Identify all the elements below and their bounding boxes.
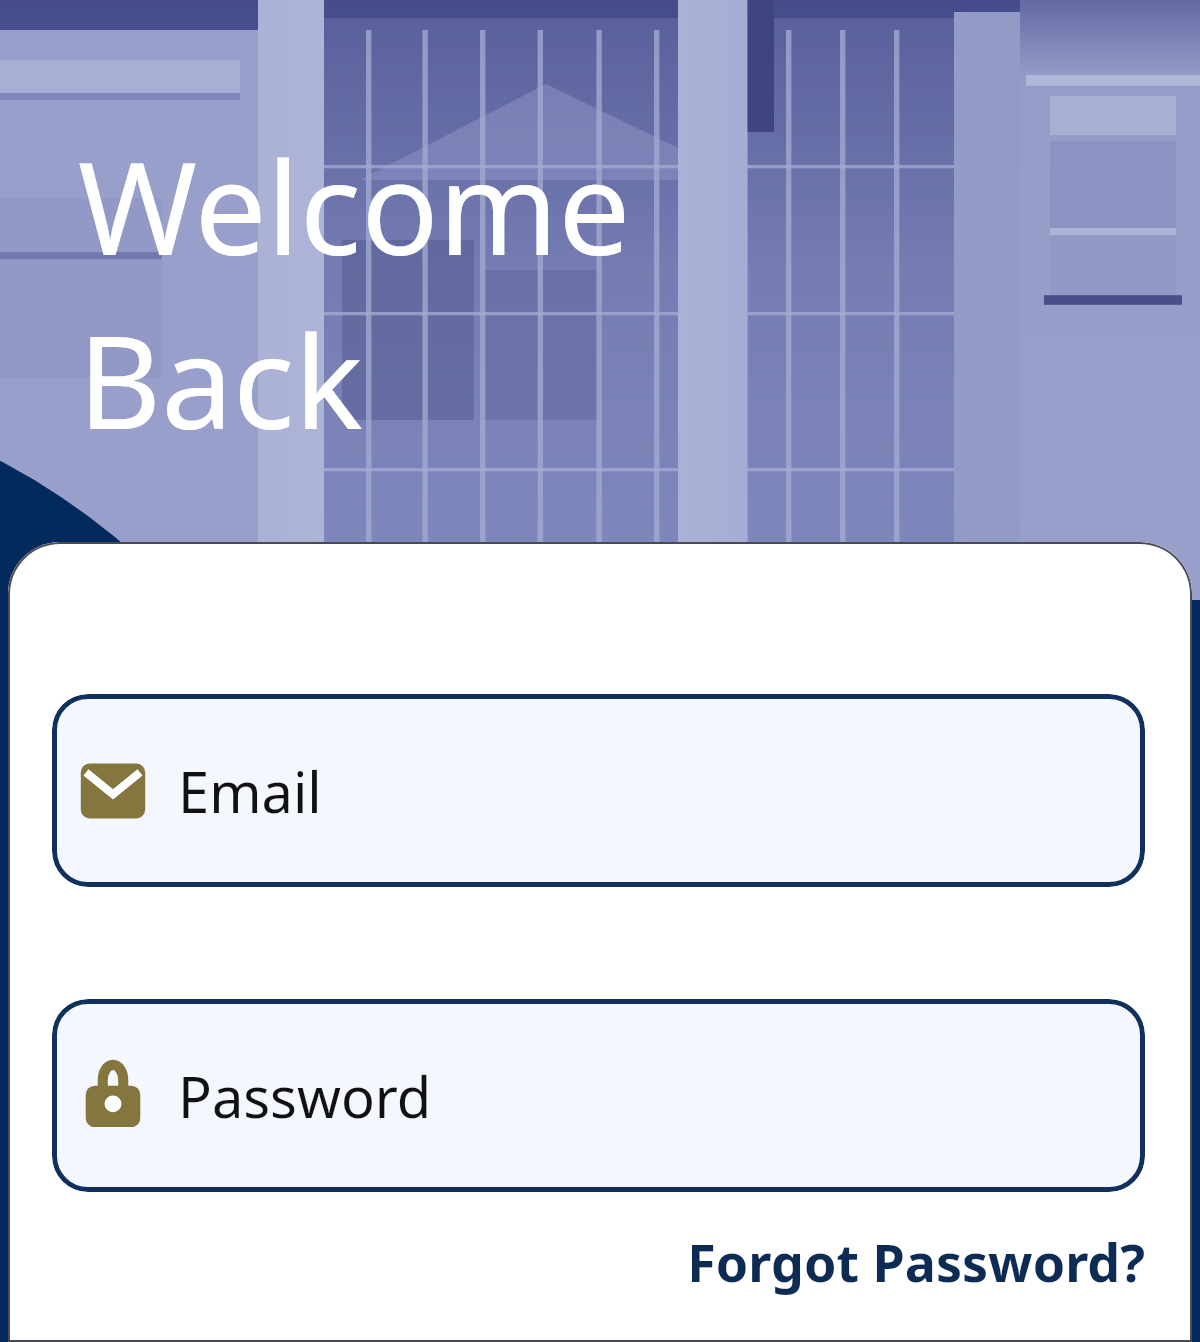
button[interactable]: Forgot Password?	[52, 1226, 1145, 1297]
staticText: Email	[178, 753, 322, 829]
staticText: Password	[178, 1058, 432, 1134]
button[interactable]: Email	[52, 694, 1145, 887]
staticText: Forgot Password?	[687, 1226, 1145, 1297]
staticText: Back	[78, 292, 363, 466]
staticText: Welcome	[78, 118, 631, 292]
button[interactable]: Password	[52, 999, 1145, 1192]
